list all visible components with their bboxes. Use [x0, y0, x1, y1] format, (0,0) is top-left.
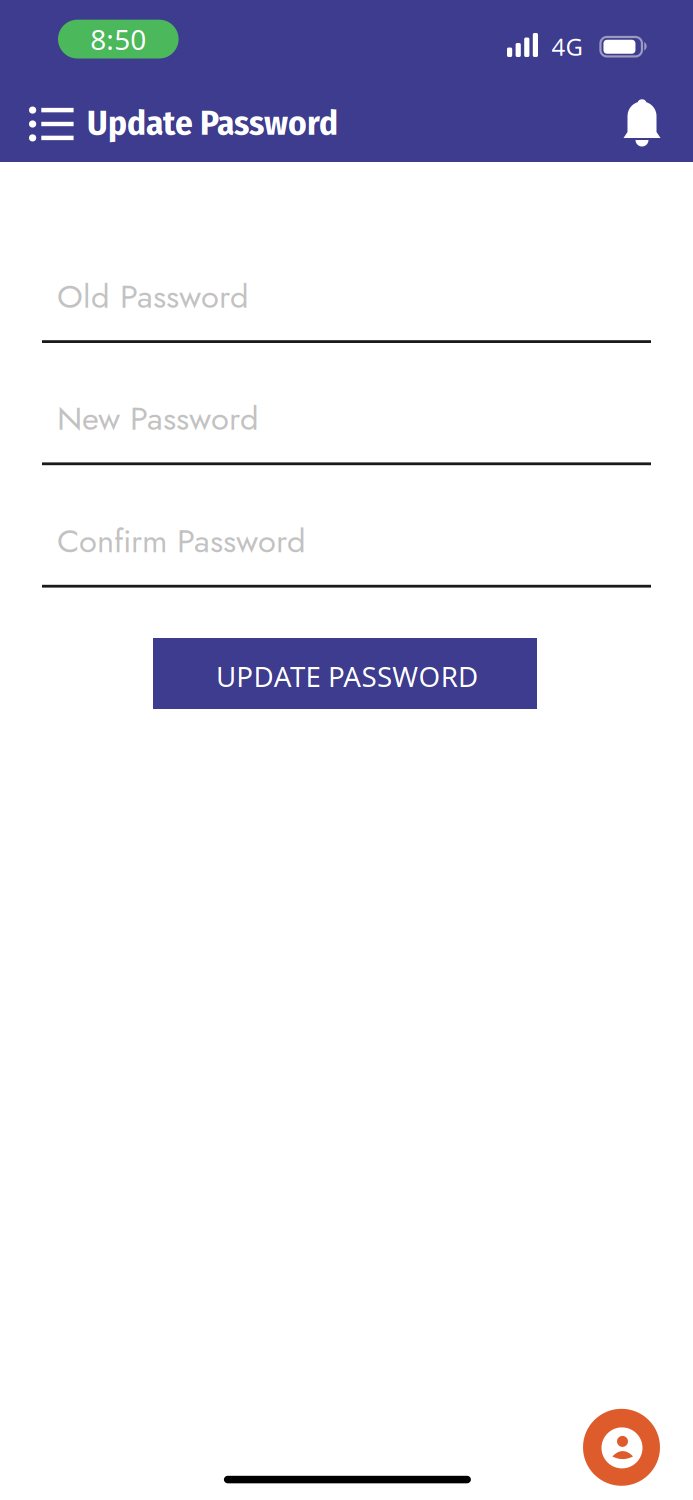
button[interactable]: UPDATE PASSWORD [153, 638, 537, 709]
staticText: Old Password [57, 273, 249, 320]
staticText: 4G [551, 30, 582, 63]
staticText: New Password [57, 395, 259, 442]
staticText: UPDATE PASSWORD [216, 657, 478, 695]
staticText: Update Password [87, 102, 338, 144]
button[interactable]: Notifications [615, 91, 669, 154]
staticText: Confirm Password [57, 517, 306, 564]
button[interactable]: Menu [23, 98, 80, 149]
staticText: 8:50 [90, 20, 146, 58]
button[interactable]: Profile [583, 1409, 660, 1486]
